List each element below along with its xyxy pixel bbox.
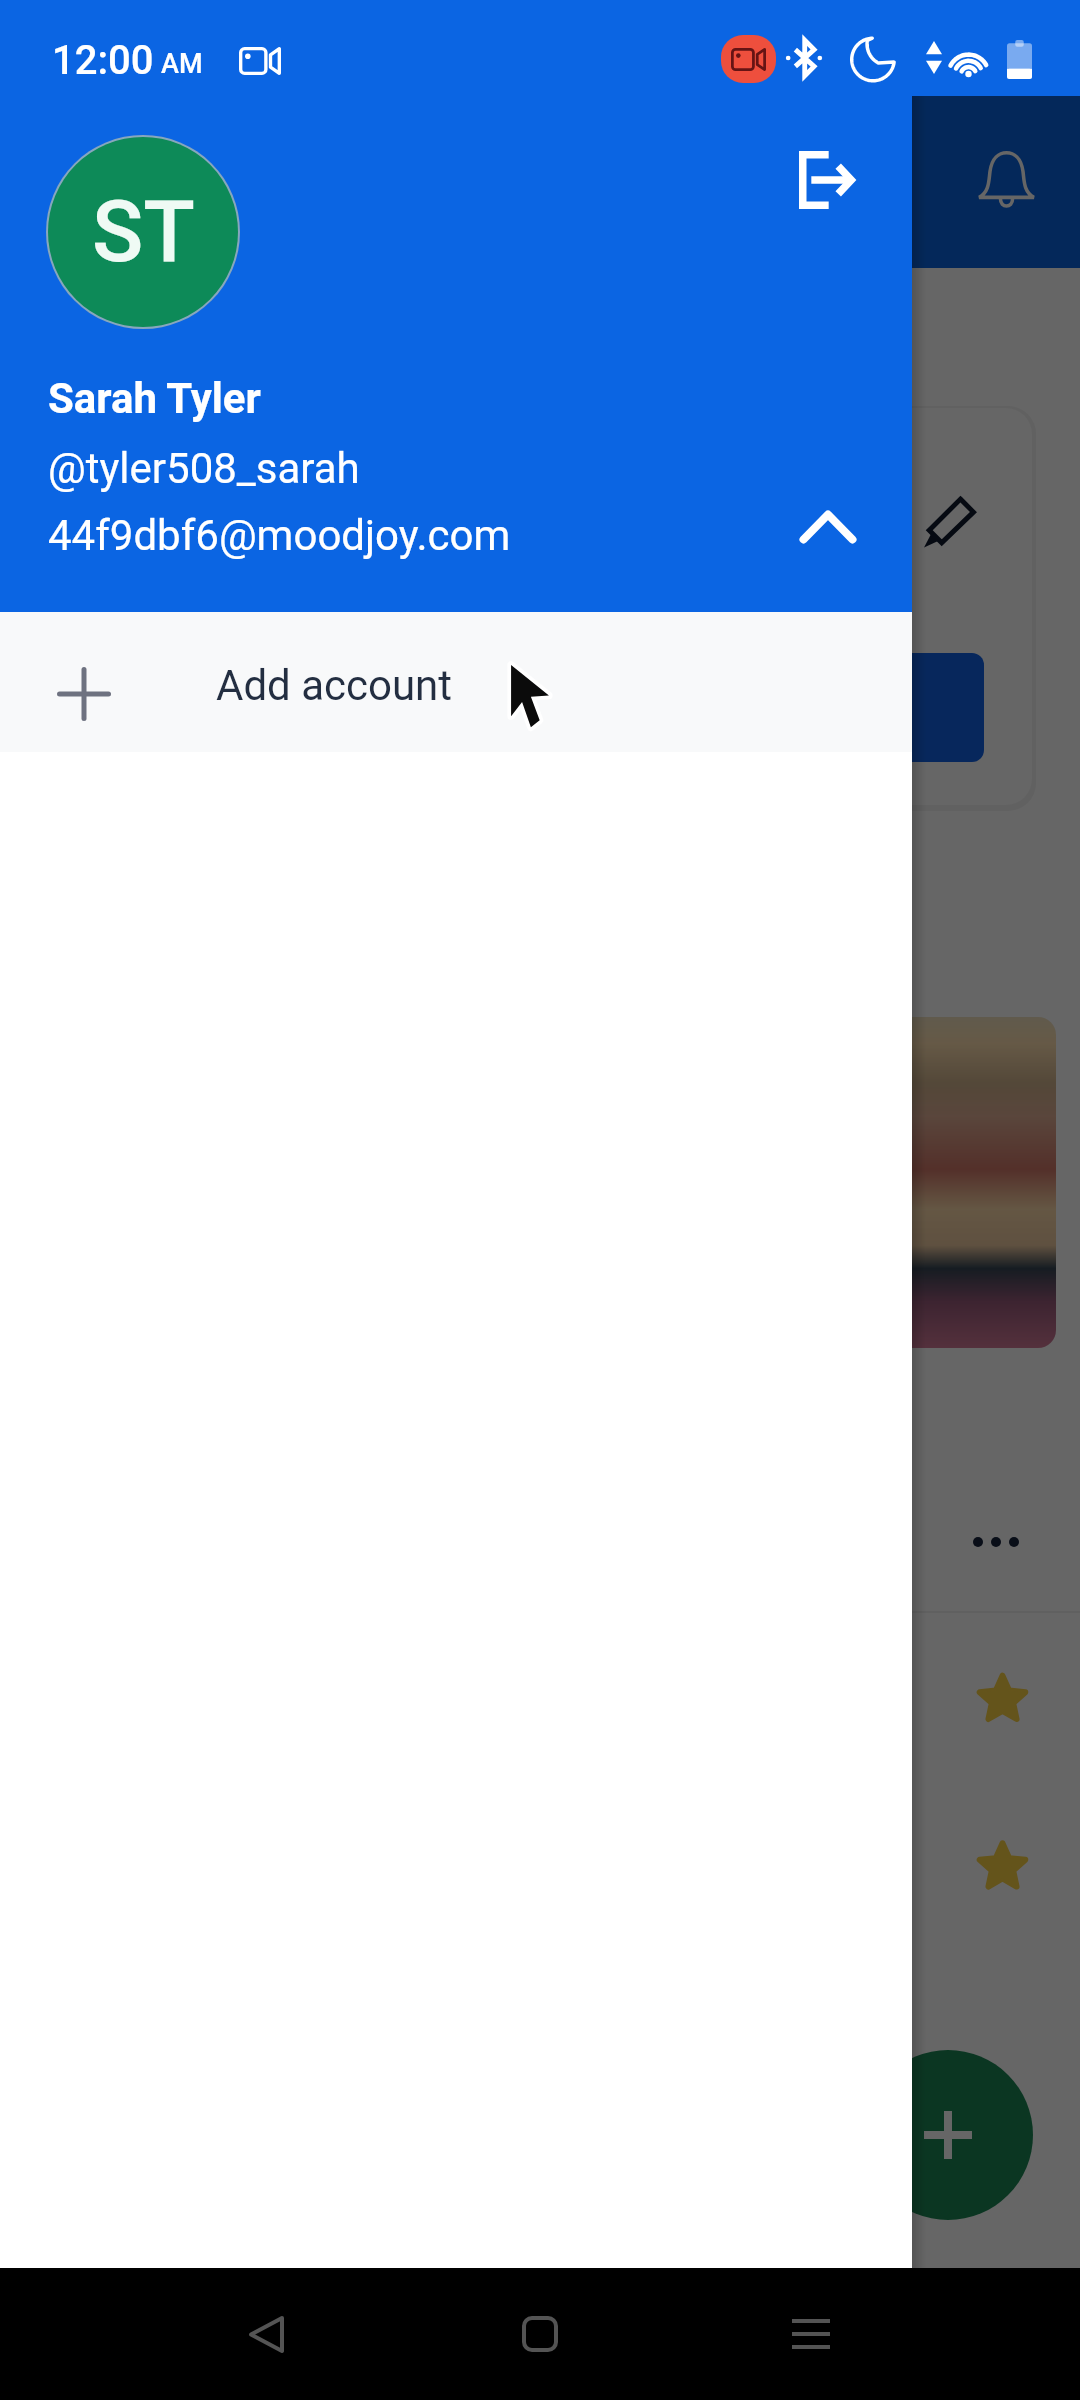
staticText: Sarah Tyler — [48, 374, 261, 423]
button[interactable]: Back — [211, 2279, 321, 2389]
button[interactable] — [790, 653, 984, 762]
staticText: 44f9dbf6@moodjoy.com — [48, 511, 511, 560]
staticText: @tyler508_sarah — [48, 444, 360, 493]
button[interactable] — [752, 1017, 1056, 1348]
button[interactable]: Home — [485, 2279, 595, 2389]
staticText: ST — [92, 182, 195, 282]
button[interactable]: More options — [932, 1478, 1060, 1606]
button[interactable]: Sign out — [767, 120, 887, 240]
button[interactable]: Notifications — [946, 120, 1066, 240]
staticText: AM — [161, 48, 203, 80]
button[interactable]: Collapse account list — [768, 467, 888, 587]
button[interactable]: Add account — [0, 612, 912, 752]
button[interactable] — [46, 408, 1032, 805]
button[interactable]: Edit — [899, 472, 999, 572]
button[interactable]: Recent apps — [756, 2279, 866, 2389]
staticText: Add account — [216, 661, 453, 710]
button[interactable]: Account avatar — [48, 137, 238, 327]
button[interactable]: Add — [863, 2050, 1033, 2220]
staticText: 12:00 — [52, 37, 154, 84]
